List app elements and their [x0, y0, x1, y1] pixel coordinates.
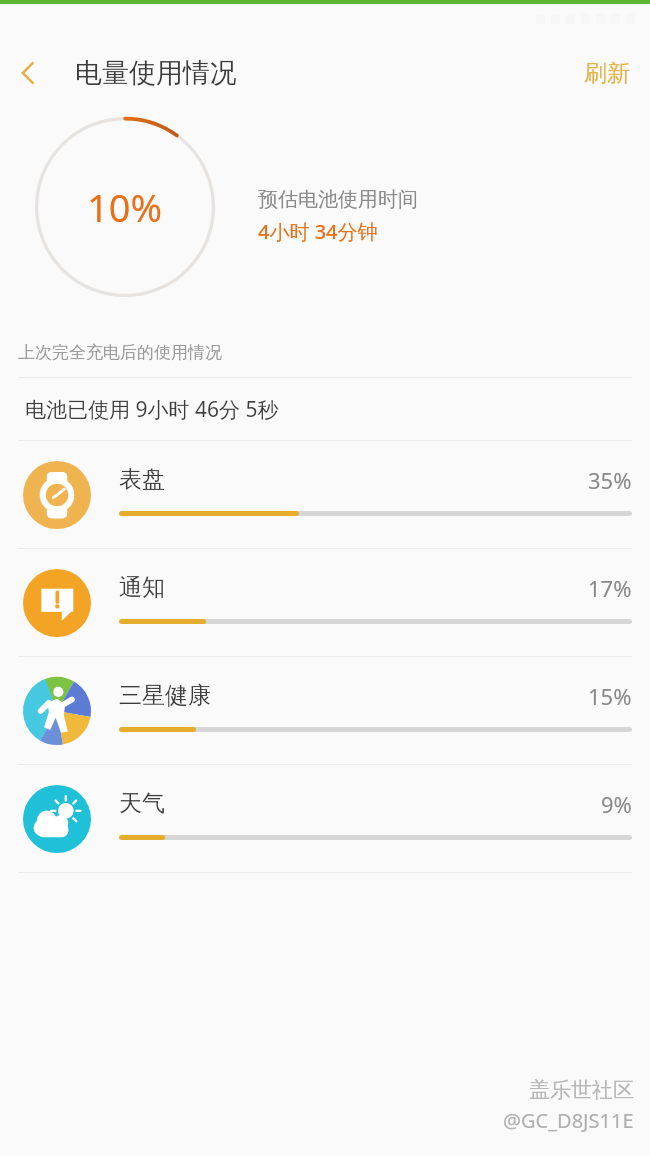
- staticText: @GC_D8JS11E: [503, 1107, 634, 1134]
- staticText: 15%: [588, 681, 632, 711]
- button[interactable]: 通知: [0, 549, 650, 656]
- button[interactable]: 刷新: [564, 47, 650, 100]
- button[interactable]: 表盘: [0, 441, 650, 548]
- staticText: 刷新: [584, 59, 630, 88]
- staticText: 三星健康: [119, 681, 211, 710]
- staticText: 10%: [87, 181, 163, 233]
- staticText: 35%: [588, 465, 632, 495]
- button[interactable]: 天气: [0, 765, 650, 872]
- button[interactable]: 三星健康: [0, 657, 650, 764]
- button[interactable]: Back: [0, 45, 56, 101]
- staticText: 预估电池使用时间: [258, 187, 418, 212]
- staticText: 电量使用情况: [75, 56, 237, 90]
- staticText: 电池已使用 9小时 46分 5秒: [25, 395, 279, 424]
- staticText: 天气: [119, 789, 165, 818]
- button[interactable]: 电池已使用 9小时 46分 5秒: [0, 378, 650, 440]
- staticText: 9%: [601, 789, 632, 819]
- staticText: 盖乐世社区: [529, 1077, 634, 1103]
- staticText: 上次完全充电后的使用情况: [18, 342, 222, 363]
- staticText: 表盘: [119, 465, 165, 494]
- staticText: 通知: [119, 573, 165, 602]
- staticText: 4小时 34分钟: [258, 218, 378, 245]
- staticText: 17%: [588, 573, 632, 603]
